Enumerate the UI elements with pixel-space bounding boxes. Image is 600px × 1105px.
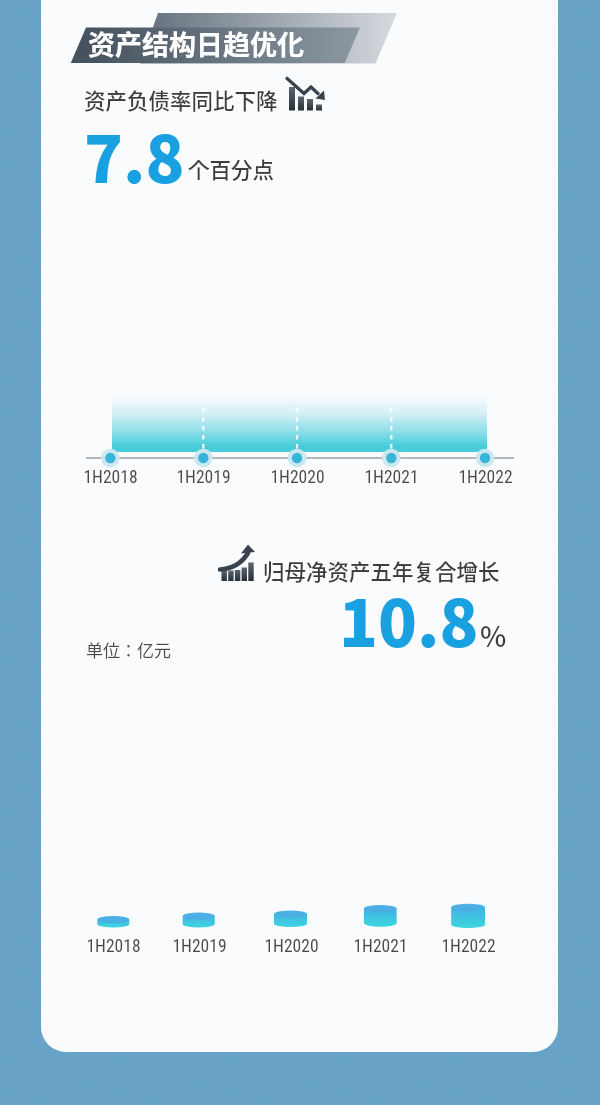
staticText: 个百分点 [188,153,275,184]
staticText: 1H2021 [353,936,408,957]
staticText: % [480,615,507,656]
staticText: 归母净资产五年复合增长 [263,555,500,586]
staticText: 1H2020 [270,467,325,488]
staticText: 1H2022 [458,467,513,488]
staticText: 1H2020 [264,936,319,957]
staticText: 资产结构日趋优化 [88,24,304,63]
staticText: 10.8 [339,573,479,666]
staticText: 7.8 [84,109,185,202]
staticText: 资产负债率同比下降 [84,84,278,115]
staticText: 1H2019 [172,936,227,957]
staticText: 1H2022 [441,936,496,957]
staticText: 1H2018 [86,936,141,957]
staticText: 单位：亿元 [86,637,171,662]
staticText: 1H2018 [83,467,138,488]
staticText: 1H2021 [364,467,419,488]
staticText: 1H2019 [176,467,231,488]
